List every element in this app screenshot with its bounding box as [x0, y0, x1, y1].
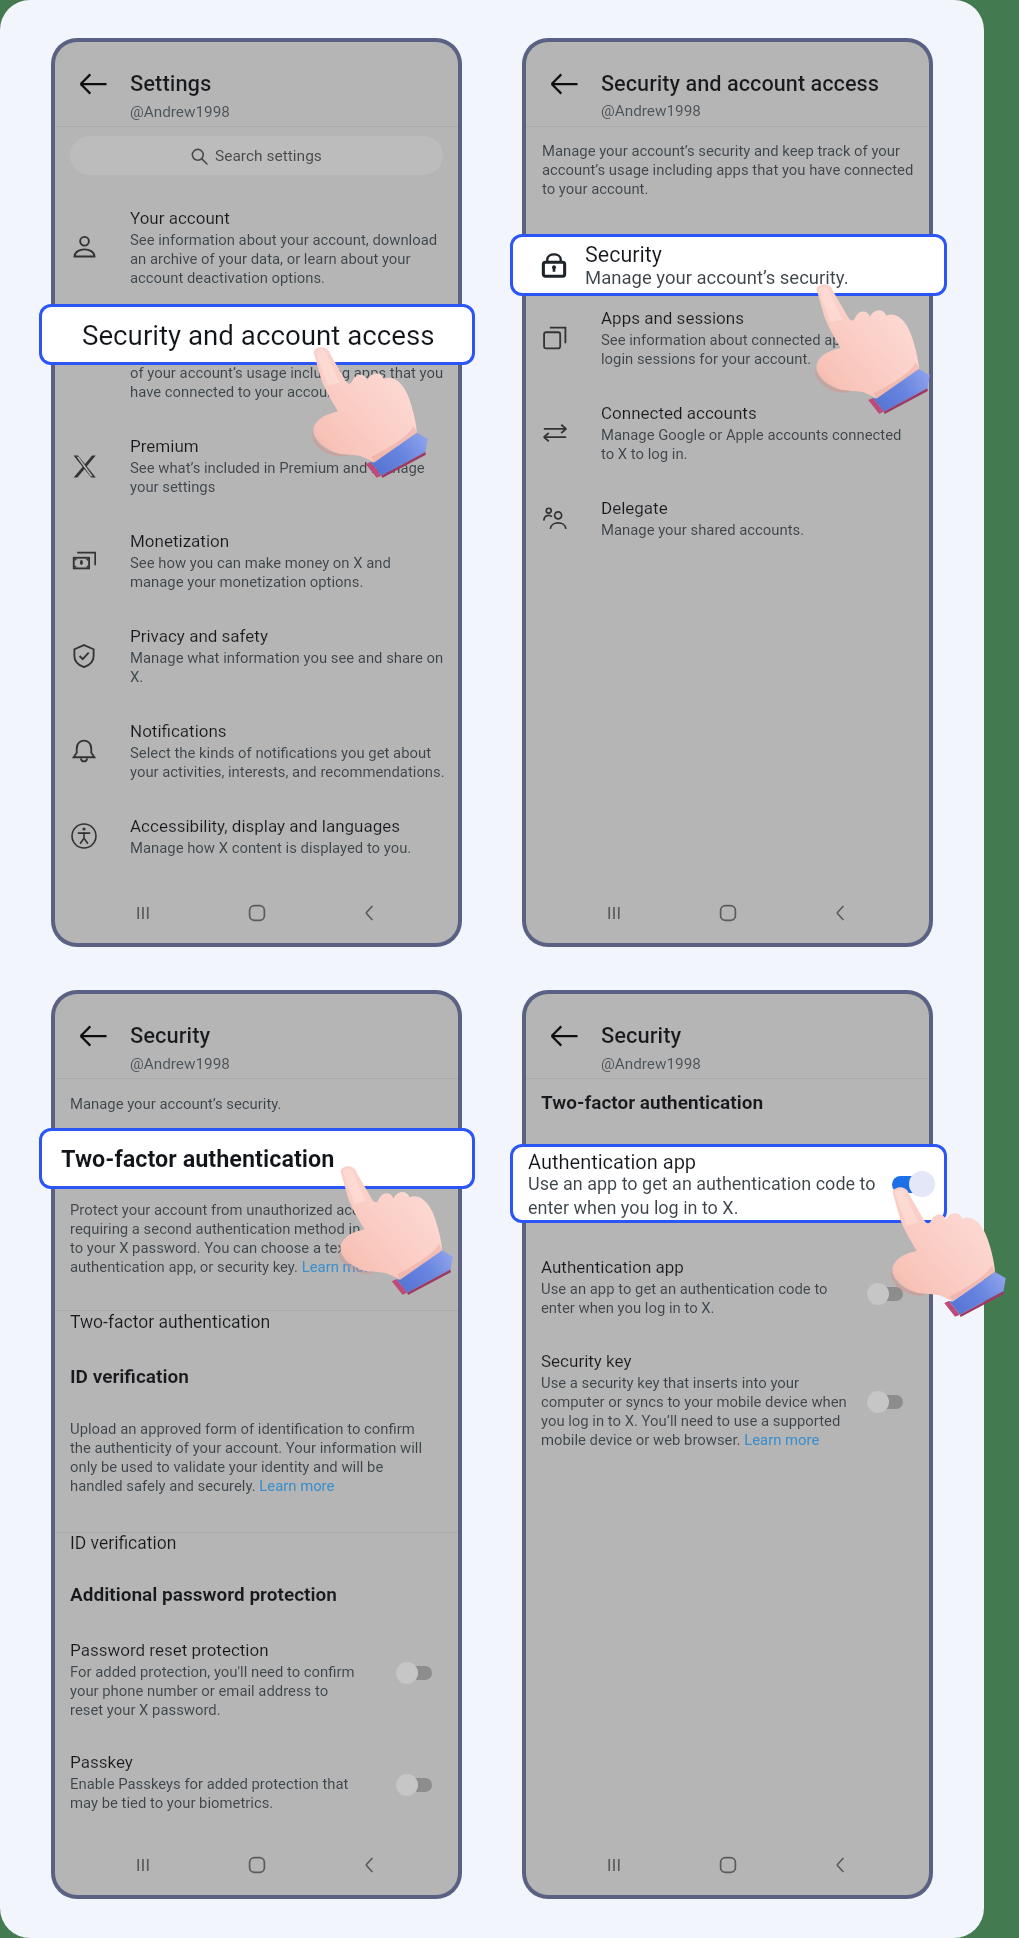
- button[interactable]: Navigate up: [55, 42, 130, 126]
- button[interactable]: Security key: [526, 1351, 929, 1449]
- button[interactable]: Security: [513, 237, 944, 293]
- staticText: Additional password protection: [70, 1583, 337, 1605]
- staticText: @Andrew1998: [601, 1055, 701, 1073]
- button[interactable]: Back: [345, 888, 395, 938]
- staticText: Monetization: [130, 531, 230, 551]
- staticText: Search settings: [215, 147, 322, 165]
- button[interactable]: Back: [345, 1840, 395, 1890]
- staticText: Protect your account from unauthorized a…: [70, 1201, 434, 1276]
- staticText: Premium: [130, 436, 199, 456]
- staticText: Connected accounts: [601, 403, 757, 423]
- button[interactable]: Home: [703, 888, 753, 938]
- staticText: Enable Passkeys for added protection tha…: [70, 1775, 355, 1812]
- button[interactable]: Navigate up: [526, 994, 601, 1078]
- staticText: Security and account access: [82, 319, 435, 351]
- button[interactable]: Switch off: [396, 1662, 434, 1684]
- staticText: Use an app to get an authentication code…: [541, 1181, 851, 1218]
- staticText: Two-factor authentication: [70, 1312, 271, 1333]
- button[interactable]: Switch off: [867, 1283, 905, 1305]
- button[interactable]: Accessibility, display and languages: [55, 816, 458, 856]
- button[interactable]: Apps and sessions: [526, 308, 929, 368]
- staticText: Manage Google or Apple accounts connecte…: [601, 426, 907, 463]
- staticText: Two-factor authentication: [541, 1091, 764, 1113]
- staticText: Manage your account’s security and keep …: [130, 345, 448, 401]
- button[interactable]: Security: [526, 233, 929, 273]
- button[interactable]: Home: [232, 1840, 282, 1890]
- staticText: Security: [130, 1023, 211, 1049]
- button[interactable]: Home: [703, 1840, 753, 1890]
- staticText: Select the kinds of notifications you ge…: [130, 744, 448, 781]
- staticText: Accessibility, display and languages: [130, 816, 401, 836]
- button[interactable]: Two-factor authentication: [42, 1131, 472, 1186]
- staticText: Upload an approved form of identificatio…: [70, 1420, 434, 1495]
- staticText: Delegate: [601, 498, 668, 518]
- button[interactable]: Authentication app: [526, 1158, 929, 1218]
- staticText: Authentication app: [528, 1150, 697, 1173]
- button[interactable]: Authentication app: [526, 1257, 929, 1317]
- button[interactable]: ID verification: [55, 1533, 458, 1562]
- staticText: Security: [585, 242, 662, 267]
- button[interactable]: Monetization: [55, 531, 458, 591]
- button[interactable]: Notifications: [55, 721, 458, 781]
- staticText: Two-factor authentication: [61, 1145, 335, 1172]
- staticText: Password reset protection: [70, 1640, 269, 1660]
- staticText: Security: [601, 233, 662, 253]
- button[interactable]: Connected accounts: [526, 403, 929, 463]
- staticText: Security and account access: [601, 71, 880, 96]
- staticText: Authentication app: [541, 1158, 684, 1178]
- button[interactable]: Passkey: [55, 1752, 458, 1812]
- button[interactable]: Switch on: [867, 1180, 905, 1202]
- button[interactable]: Back: [816, 1840, 866, 1890]
- button[interactable]: Two-factor authentication: [55, 1312, 458, 1341]
- staticText: Apps and sessions: [601, 308, 744, 328]
- staticText: Use an app to get an authentication code…: [528, 1173, 881, 1218]
- button[interactable]: Recent apps: [118, 1840, 168, 1890]
- staticText: @Andrew1998: [130, 103, 230, 121]
- button[interactable]: Premium: [55, 436, 458, 496]
- staticText: Passkey: [70, 1752, 133, 1772]
- button[interactable]: Recent apps: [118, 888, 168, 938]
- staticText: Settings: [130, 71, 212, 97]
- button[interactable]: Home: [232, 888, 282, 938]
- button[interactable]: Search settings: [70, 136, 443, 175]
- button[interactable]: Security and account access: [55, 322, 458, 401]
- button[interactable]: Switch on: [889, 1171, 934, 1197]
- staticText: Manage what information you see and shar…: [130, 649, 448, 686]
- staticText: Security: [601, 1023, 682, 1049]
- button[interactable]: Switch off: [396, 1774, 434, 1796]
- button[interactable]: Security and account access: [42, 307, 472, 362]
- staticText: Manage how X content is displayed to you…: [130, 839, 412, 856]
- staticText: See what’s included in Premium and manag…: [130, 459, 448, 496]
- staticText: ID verification: [70, 1365, 189, 1387]
- button[interactable]: Switch off: [867, 1391, 905, 1413]
- button[interactable]: Authentication app: [513, 1147, 944, 1220]
- staticText: Use an app to get an authentication code…: [541, 1280, 851, 1317]
- button[interactable]: Password reset protection: [55, 1640, 458, 1719]
- staticText: Manage your account’s security and keep …: [542, 142, 916, 198]
- other: Tap here: [889, 1188, 1006, 1317]
- button[interactable]: Navigate up: [55, 994, 130, 1078]
- staticText: For added protection, you'll need to con…: [70, 1663, 355, 1719]
- other: Tap here: [813, 285, 930, 414]
- other: Tap here: [337, 1167, 453, 1295]
- staticText: Manage your shared accounts.: [601, 521, 805, 538]
- staticText: Two-factor authentication: [70, 1142, 293, 1164]
- staticText: Security key: [541, 1351, 632, 1371]
- staticText: ID verification: [70, 1533, 177, 1554]
- button[interactable]: Back: [816, 888, 866, 938]
- other: Tap here: [310, 348, 428, 478]
- button[interactable]: Recent apps: [589, 888, 639, 938]
- staticText: See information about connected apps and…: [601, 331, 919, 368]
- staticText: @Andrew1998: [601, 102, 701, 120]
- button[interactable]: Your account: [55, 208, 458, 287]
- button[interactable]: Delegate: [526, 498, 929, 538]
- button[interactable]: Privacy and safety: [55, 626, 458, 686]
- staticText: Authentication app: [541, 1257, 684, 1277]
- staticText: See how you can make money on X and mana…: [130, 554, 448, 591]
- button[interactable]: Recent apps: [589, 1840, 639, 1890]
- staticText: Manage your account’s security.: [601, 256, 813, 273]
- button[interactable]: Navigate up: [526, 42, 601, 126]
- staticText: Manage your account’s security.: [70, 1095, 282, 1112]
- staticText: Privacy and safety: [130, 626, 268, 646]
- staticText: Use a security key that inserts into you…: [541, 1374, 851, 1449]
